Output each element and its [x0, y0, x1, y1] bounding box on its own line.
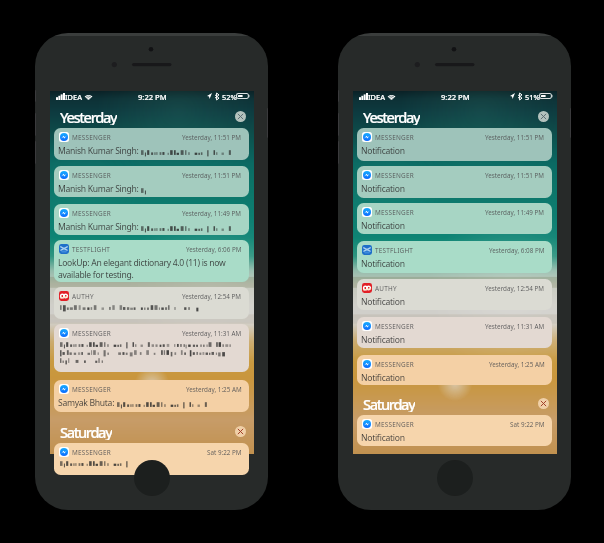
staticText: 9:22 PM	[441, 92, 470, 102]
button[interactable]: Clear Yesterday notifications	[235, 111, 246, 122]
staticText: Yesterday, 1:25 AM	[489, 360, 545, 369]
staticText: Yesterday, 11:51 PM	[485, 133, 545, 142]
button[interactable]: MESSENGER	[357, 317, 552, 348]
button[interactable]: MESSENGER	[54, 204, 249, 235]
staticText: Notification	[361, 258, 405, 270]
staticText: Notification	[361, 334, 405, 346]
button[interactable]: AUTHY	[54, 287, 249, 319]
staticText: MESSENGER	[72, 209, 111, 218]
staticText: Yesterday, 11:31 AM	[182, 329, 242, 338]
staticText: Yesterday, 11:51 PM	[182, 171, 242, 180]
button[interactable]: MESSENGER	[54, 380, 249, 412]
staticText: Sat 9:22 PM	[207, 448, 242, 457]
staticText: MESSENGER	[375, 208, 414, 217]
staticText: 52%	[222, 92, 237, 102]
staticText: Yesterday, 1:25 AM	[186, 385, 242, 394]
button[interactable]: Home	[134, 460, 170, 496]
staticText: AUTHY	[72, 292, 94, 301]
staticText: MESSENGER	[375, 133, 414, 142]
staticText: Yesterday, 11:49 PM	[485, 208, 545, 217]
staticText: Yesterday, 6:08 PM	[489, 246, 545, 255]
button[interactable]: MESSENGER	[357, 415, 552, 446]
staticText: IDEA	[65, 92, 82, 102]
staticText: Samyak Bhuta:	[58, 397, 115, 409]
button[interactable]: MESSENGER	[54, 443, 249, 475]
button[interactable]: Clear Yesterday notifications	[538, 111, 549, 122]
staticText: 9:22 PM	[138, 92, 167, 102]
button[interactable]: MESSENGER	[54, 128, 249, 160]
staticText: TESTFLIGHT	[375, 246, 414, 255]
staticText: IDEA	[368, 92, 385, 102]
staticText: Yesterday	[60, 107, 117, 125]
staticText: Yesterday, 11:51 PM	[182, 133, 242, 142]
staticText: MESSENGER	[72, 133, 111, 142]
button[interactable]: AUTHY	[357, 279, 552, 310]
staticText: Yesterday, 12:54 PM	[485, 284, 545, 293]
staticText: Notification	[361, 432, 405, 444]
button[interactable]: MESSENGER	[357, 355, 552, 385]
staticText: AUTHY	[375, 284, 397, 293]
button[interactable]: Clear Saturday notifications	[538, 398, 549, 409]
staticText: Manish Kumar Singh:	[58, 221, 139, 233]
button[interactable]: TESTFLIGHT	[357, 241, 552, 273]
staticText: Manish Kumar Singh:	[58, 183, 139, 195]
button[interactable]: MESSENGER	[54, 324, 249, 372]
staticText: available for testing.	[58, 269, 134, 281]
staticText: MESSENGER	[72, 385, 111, 394]
staticText: Yesterday, 11:49 PM	[182, 209, 242, 218]
staticText: TESTFLIGHT	[72, 245, 111, 254]
button[interactable]: MESSENGER	[54, 166, 249, 197]
button[interactable]: MESSENGER	[357, 166, 552, 198]
button[interactable]: MESSENGER	[357, 128, 552, 161]
staticText: Saturday	[60, 422, 112, 440]
staticText: Yesterday, 6:06 PM	[186, 245, 242, 254]
staticText: Notification	[361, 296, 405, 308]
staticText: MESSENGER	[375, 171, 414, 180]
staticText: Notification	[361, 372, 405, 384]
button[interactable]: Home	[437, 460, 473, 496]
staticText: Saturday	[363, 394, 415, 412]
staticText: MESSENGER	[375, 322, 414, 331]
button[interactable]: MESSENGER	[357, 203, 552, 234]
staticText: Notification	[361, 145, 405, 157]
button[interactable]: Clear Saturday notifications	[235, 426, 246, 437]
staticText: Yesterday	[363, 107, 420, 125]
staticText: Notification	[361, 183, 405, 195]
staticText: MESSENGER	[72, 448, 111, 457]
staticText: MESSENGER	[375, 420, 414, 429]
staticText: Sat 9:22 PM	[510, 420, 545, 429]
staticText: Yesterday, 11:31 AM	[485, 322, 545, 331]
staticText: MESSENGER	[375, 360, 414, 369]
staticText: 51%	[525, 92, 540, 102]
button[interactable]: TESTFLIGHT	[54, 240, 249, 282]
staticText: Notification	[361, 220, 405, 232]
staticText: MESSENGER	[72, 171, 111, 180]
staticText: MESSENGER	[72, 329, 111, 338]
staticText: Yesterday, 12:54 PM	[182, 292, 242, 301]
staticText: Manish Kumar Singh:	[58, 145, 139, 157]
staticText: Yesterday, 11:51 PM	[485, 171, 545, 180]
staticText: LookUp: An elegant dictionary 4.0 (11) i…	[58, 257, 226, 269]
